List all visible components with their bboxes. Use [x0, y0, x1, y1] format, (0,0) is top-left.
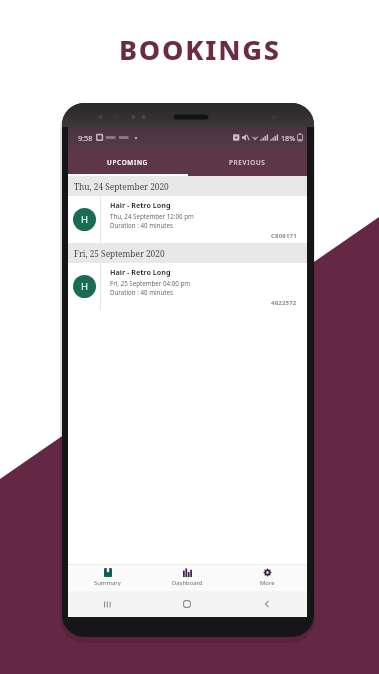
staticText: Thu, 24 September 12:00 pm: [110, 212, 194, 220]
staticText: 4822572: [271, 299, 297, 307]
button[interactable]: Recents: [68, 591, 147, 617]
staticText: Summary: [94, 579, 121, 587]
staticText: H: [81, 280, 89, 293]
staticText: Duration : 40 minutes: [110, 288, 173, 296]
staticText: BOOKINGS: [119, 31, 281, 68]
staticText: UPCOMING: [107, 158, 148, 167]
button[interactable]: Home: [147, 591, 227, 617]
staticText: H: [81, 213, 89, 226]
staticText: 18%: [281, 133, 296, 143]
staticText: Fri, 25 September 2020: [74, 248, 165, 259]
staticText: Hair - Retro Long: [110, 200, 171, 210]
staticText: PREVIOUS: [229, 158, 266, 167]
button[interactable]: H: [68, 263, 307, 310]
staticText: Duration : 40 minutes: [110, 221, 173, 229]
button[interactable]: Summary: [68, 564, 147, 591]
button[interactable]: PREVIOUS: [187, 148, 307, 176]
staticText: Hair - Retro Long: [110, 267, 171, 277]
button[interactable]: Dashboard: [147, 564, 227, 591]
staticText: C806171: [271, 232, 297, 240]
staticText: 9:58: [78, 133, 93, 143]
button[interactable]: H: [68, 196, 307, 243]
button[interactable]: More: [227, 564, 307, 591]
staticText: More: [260, 579, 275, 587]
button[interactable]: UPCOMING: [68, 148, 187, 176]
staticText: Dashboard: [172, 579, 203, 587]
staticText: Thu, 24 September 2020: [74, 181, 169, 192]
button[interactable]: Back: [227, 591, 307, 617]
staticText: Fri, 25 September 04:00 pm: [110, 279, 190, 287]
